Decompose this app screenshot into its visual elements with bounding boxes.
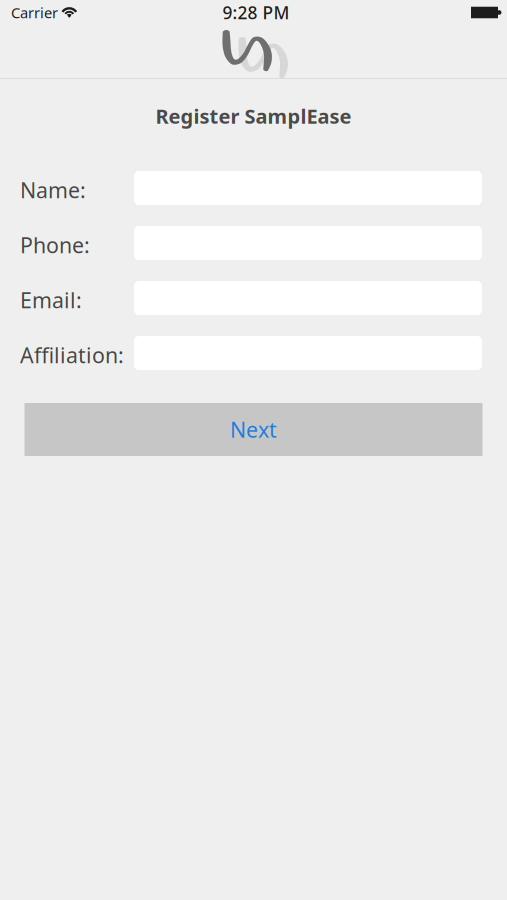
staticText: Next <box>230 415 277 444</box>
button[interactable]: Next <box>24 403 482 456</box>
staticText: Phone: <box>20 231 90 259</box>
staticText: Name: <box>20 176 86 204</box>
staticText: 9:28 PM <box>222 1 289 24</box>
staticText: Email: <box>20 286 82 314</box>
staticText: Carrier <box>11 3 58 22</box>
staticText: Affiliation: <box>20 341 124 369</box>
staticText: Register SamplEase <box>155 103 351 129</box>
